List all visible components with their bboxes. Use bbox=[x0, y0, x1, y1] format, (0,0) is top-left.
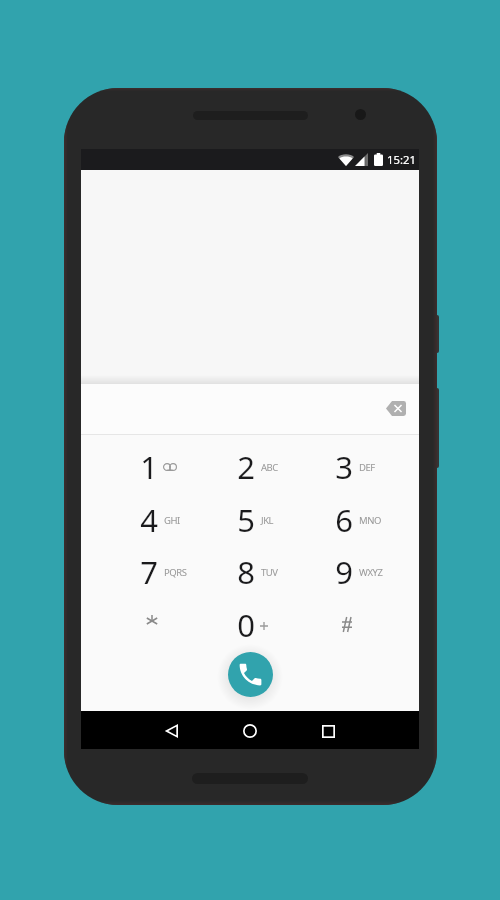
staticText: 8 bbox=[226, 551, 266, 593]
button[interactable]: 5 bbox=[206, 494, 304, 546]
staticText: 9 bbox=[324, 551, 364, 593]
button[interactable]: Call bbox=[228, 652, 273, 697]
staticText: 15:21 bbox=[387, 152, 416, 167]
staticText: 3 bbox=[324, 446, 364, 488]
button[interactable]: 3 bbox=[304, 441, 402, 493]
staticText: TUV bbox=[261, 566, 278, 579]
button[interactable]: Home bbox=[221, 711, 278, 749]
button[interactable]: 8 bbox=[206, 546, 304, 598]
button[interactable] bbox=[304, 599, 402, 651]
button[interactable]: 1 bbox=[109, 441, 207, 493]
button[interactable] bbox=[109, 599, 207, 651]
button[interactable]: Recent apps bbox=[300, 711, 357, 749]
staticText: DEF bbox=[359, 461, 375, 474]
button[interactable]: 2 bbox=[206, 441, 304, 493]
button[interactable]: 7 bbox=[109, 546, 207, 598]
staticText: 4 bbox=[129, 499, 169, 541]
staticText: 2 bbox=[226, 446, 266, 488]
button[interactable]: 0 bbox=[206, 599, 304, 651]
staticText: 6 bbox=[324, 499, 364, 541]
staticText: MNO bbox=[359, 514, 381, 527]
staticText: WXYZ bbox=[359, 566, 383, 579]
staticText: 1 bbox=[129, 446, 169, 488]
staticText: 5 bbox=[226, 499, 266, 541]
button[interactable]: Back bbox=[143, 711, 200, 749]
staticText: 0 bbox=[226, 604, 266, 646]
button[interactable]: Backspace bbox=[377, 389, 415, 427]
button[interactable]: 6 bbox=[304, 494, 402, 546]
staticText: ABC bbox=[261, 461, 278, 474]
staticText: PQRS bbox=[164, 566, 187, 579]
button[interactable]: 4 bbox=[109, 494, 207, 546]
button[interactable]: 9 bbox=[304, 546, 402, 598]
staticText: JKL bbox=[261, 514, 274, 527]
staticText: GHI bbox=[164, 514, 180, 527]
staticText: 7 bbox=[129, 551, 169, 593]
